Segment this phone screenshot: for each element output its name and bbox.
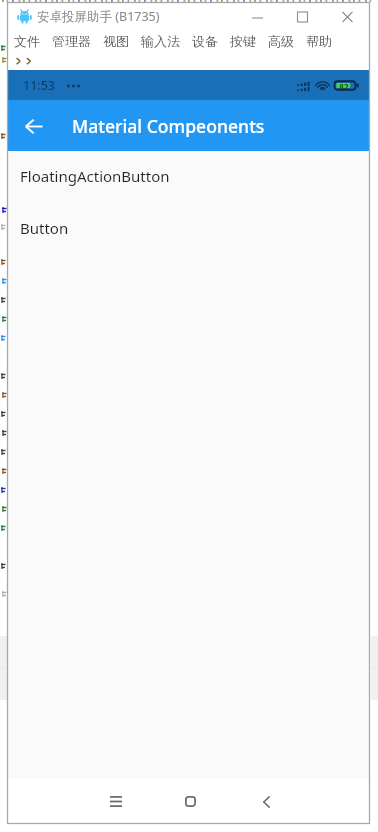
button[interactable]: FloatingActionButton	[7, 151, 370, 203]
button[interactable]: 视图	[97, 33, 135, 49]
button[interactable]: 设备	[186, 33, 224, 49]
staticText: 帮助	[306, 33, 332, 49]
button[interactable]: Button	[7, 203, 370, 255]
staticText: 文件	[14, 33, 40, 49]
button[interactable]: 输入法	[135, 33, 186, 49]
button[interactable]: 高级	[262, 33, 300, 49]
staticText: 输入法	[141, 33, 180, 49]
button[interactable]: Minimize	[235, 4, 280, 30]
staticText: Material Compeonents	[72, 114, 265, 138]
staticText: 按键	[230, 33, 256, 49]
staticText: Button	[20, 218, 69, 238]
button[interactable]: Close	[325, 4, 370, 30]
staticText: FloatingActionButton	[20, 166, 170, 186]
button[interactable]: 按键	[224, 33, 262, 49]
button[interactable]: Home	[167, 779, 214, 824]
button[interactable]: More toolbar items	[13, 51, 37, 69]
staticText: 视图	[103, 33, 129, 49]
staticText: 11:53	[23, 77, 56, 94]
button[interactable]: 管理器	[46, 33, 97, 49]
button[interactable]: 帮助	[300, 33, 338, 49]
button[interactable]: Recent apps	[92, 779, 139, 824]
button[interactable]: Back	[243, 779, 290, 824]
staticText: 安卓投屏助手 (B1735)	[37, 8, 160, 25]
staticText: 管理器	[52, 33, 91, 49]
staticText: 高级	[268, 33, 294, 49]
staticText: 设备	[192, 33, 218, 49]
staticText: 82	[339, 81, 349, 93]
button[interactable]: Maximize	[280, 4, 325, 30]
button[interactable]: Back	[16, 108, 52, 144]
button[interactable]: 文件	[8, 33, 46, 49]
